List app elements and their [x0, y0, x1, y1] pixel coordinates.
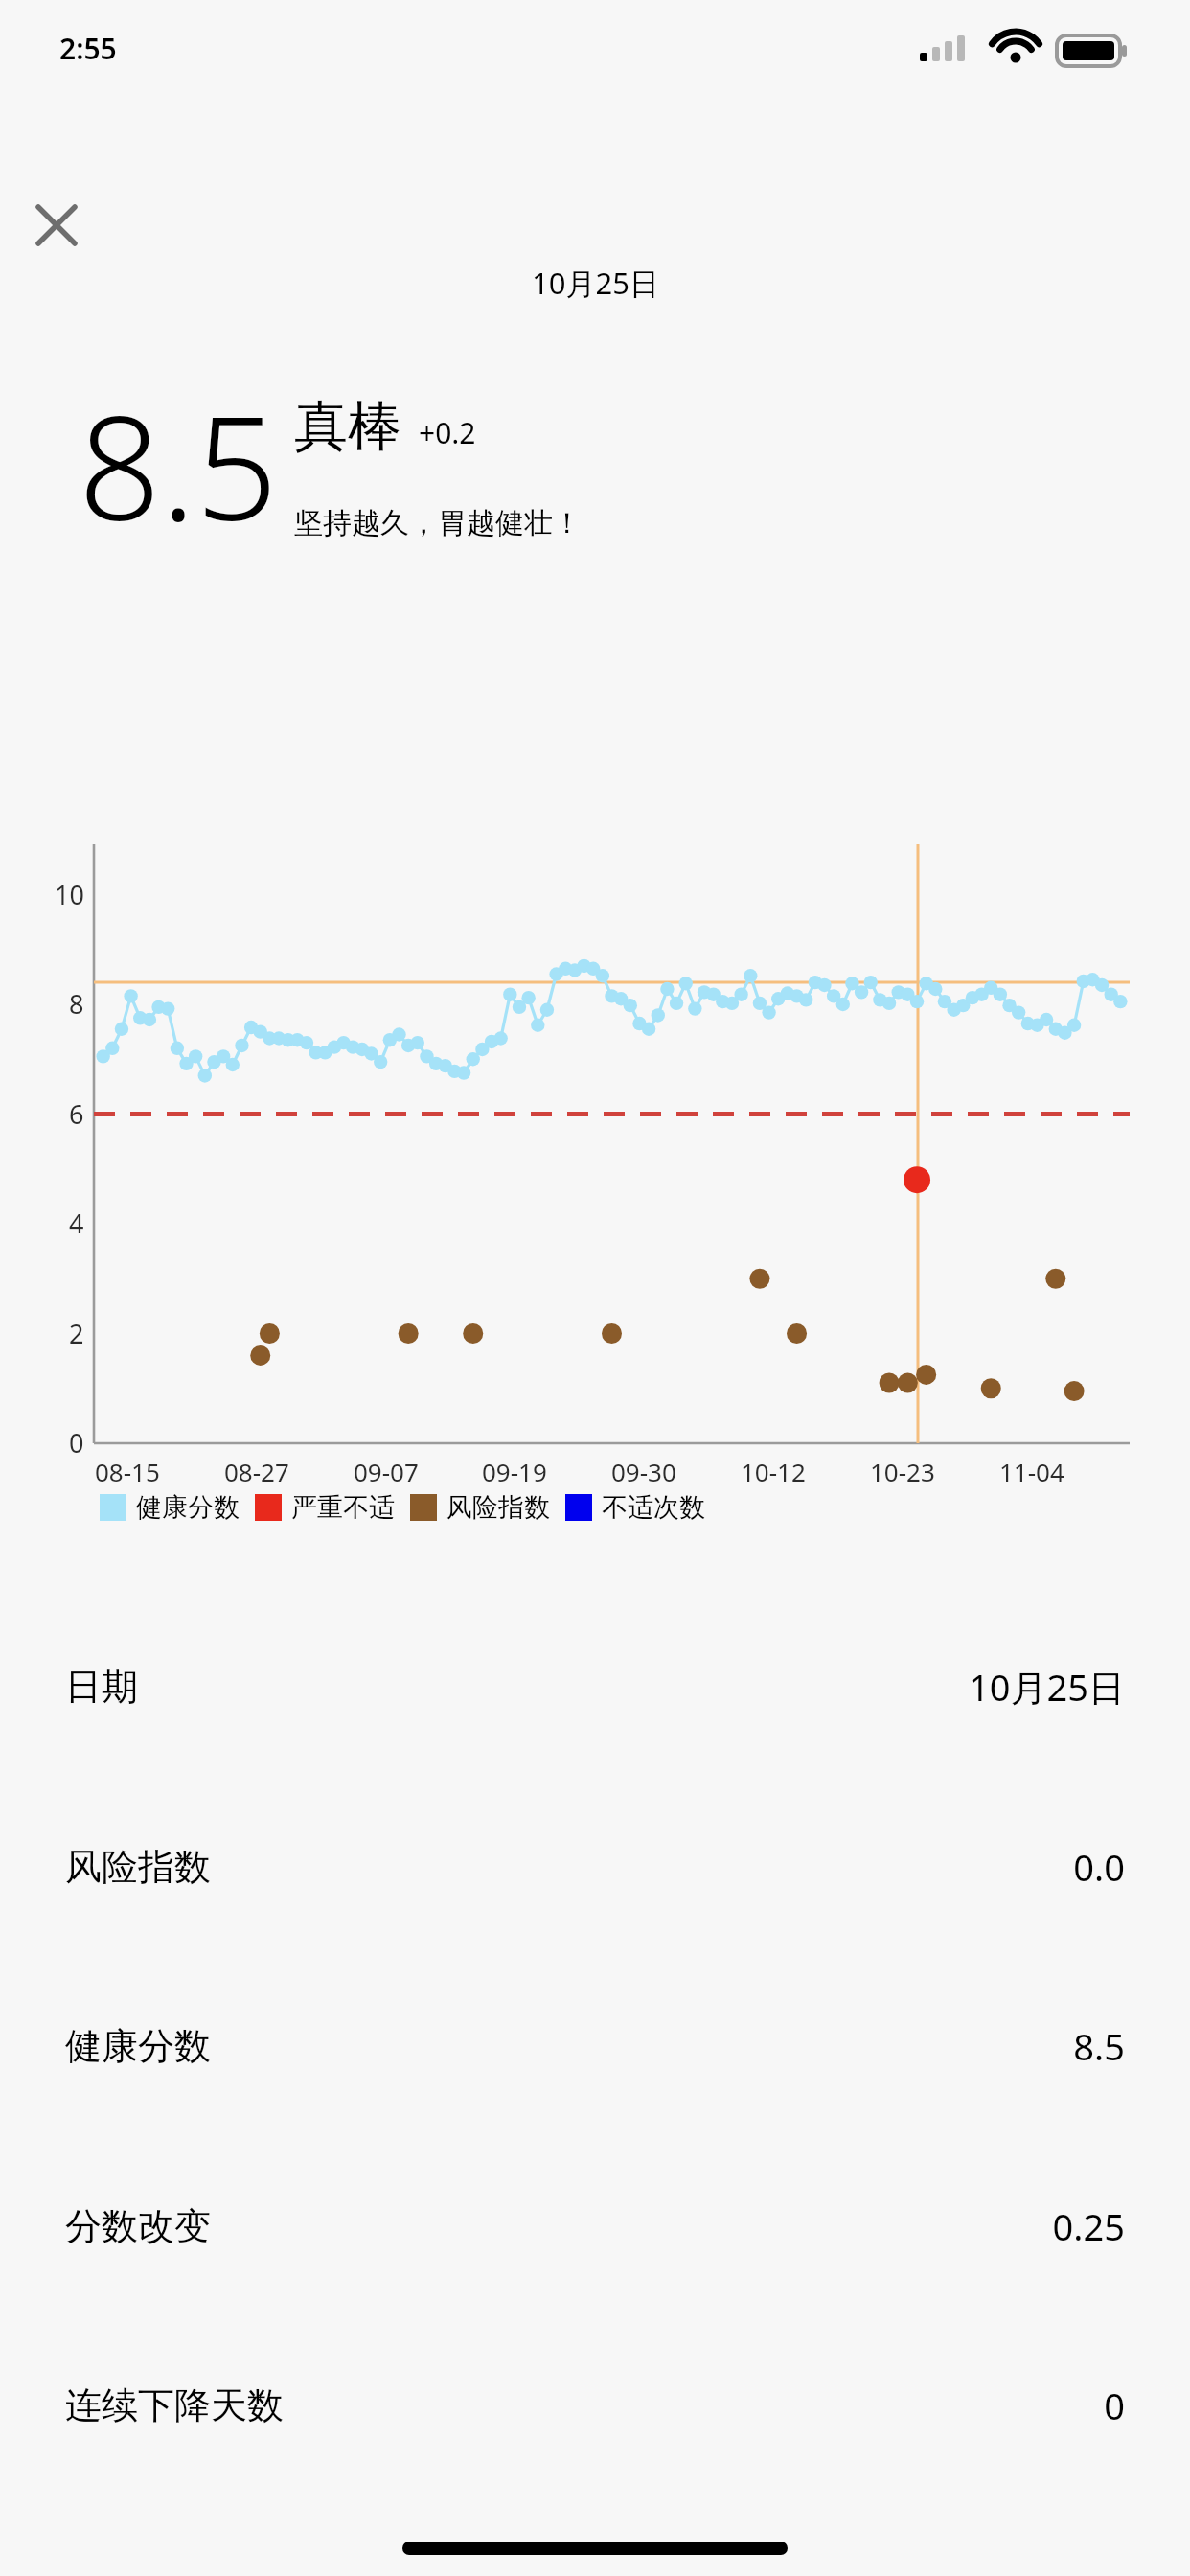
- staticText: 2:55: [59, 29, 117, 68]
- button[interactable]: 连续下降天数: [0, 2343, 1190, 2468]
- staticText: 4: [69, 1206, 84, 1241]
- staticText: 08-27: [224, 1455, 289, 1488]
- staticText: +0.2: [419, 413, 476, 452]
- staticText: 2: [69, 1316, 84, 1351]
- button[interactable]: 风险指数: [0, 1805, 1190, 1929]
- staticText: 8: [69, 986, 84, 1022]
- staticText: 10月25日: [969, 1662, 1125, 1712]
- button[interactable]: 分数改变: [0, 2164, 1190, 2288]
- staticText: 09-07: [354, 1455, 419, 1488]
- staticText: 健康分数: [65, 2023, 211, 2069]
- button[interactable]: 日期: [0, 1624, 1190, 1749]
- staticText: 0.25: [1052, 2201, 1125, 2251]
- staticText: 健康分数: [136, 1491, 240, 1524]
- staticText: 8.5: [1073, 2021, 1125, 2071]
- staticText: 10-12: [741, 1455, 806, 1488]
- button[interactable]: Close: [23, 192, 90, 259]
- button[interactable]: 健康分数: [0, 1984, 1190, 2108]
- staticText: 8.5: [79, 367, 278, 563]
- staticText: 0: [69, 1425, 84, 1460]
- staticText: 不适次数: [602, 1491, 705, 1524]
- staticText: 08-15: [95, 1455, 160, 1488]
- staticText: 11-04: [999, 1455, 1064, 1488]
- staticText: 日期: [65, 1664, 138, 1710]
- staticText: 坚持越久，胃越健壮！: [294, 505, 582, 541]
- staticText: 风险指数: [65, 1844, 211, 1890]
- staticText: 6: [69, 1096, 84, 1132]
- staticText: 09-30: [611, 1455, 676, 1488]
- staticText: 09-19: [482, 1455, 547, 1488]
- staticText: 10: [55, 877, 84, 912]
- staticText: 分数改变: [65, 2203, 211, 2249]
- staticText: 真棒: [294, 393, 401, 461]
- staticText: 连续下降天数: [65, 2382, 284, 2428]
- staticText: 0.0: [1073, 1842, 1125, 1892]
- staticText: 10月25日: [532, 263, 659, 303]
- staticText: 0: [1104, 2380, 1125, 2430]
- staticText: 风险指数: [446, 1491, 550, 1524]
- staticText: 10-23: [870, 1455, 935, 1488]
- staticText: 严重不适: [291, 1491, 395, 1524]
